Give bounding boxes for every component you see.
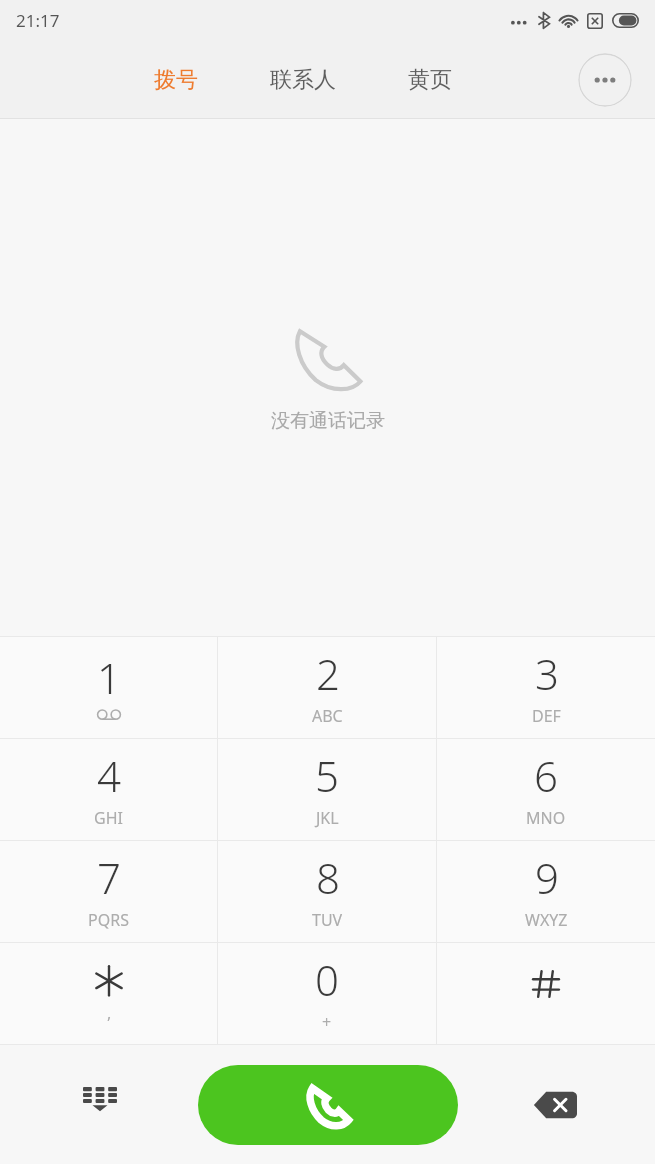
button[interactable]: 5 <box>218 739 436 840</box>
button[interactable]: Delete <box>527 1077 583 1133</box>
button[interactable]: 3 <box>437 637 655 738</box>
button[interactable]: 9 <box>437 841 655 942</box>
staticText: 9 <box>535 849 559 906</box>
button[interactable]: , <box>0 943 217 1044</box>
button[interactable]: 4 <box>0 739 217 840</box>
staticText: DEF <box>532 705 561 727</box>
button[interactable]: 拨号 <box>150 58 202 102</box>
staticText: TUV <box>312 909 343 931</box>
staticText: 3 <box>535 645 559 702</box>
staticText: 拨号 <box>154 66 198 94</box>
staticText: 21:17 <box>16 9 60 32</box>
staticText: PQRS <box>88 909 129 931</box>
staticText: 黄页 <box>408 66 452 94</box>
button[interactable] <box>437 943 655 1044</box>
button[interactable]: More options <box>578 53 632 107</box>
button[interactable]: 1 <box>0 637 217 738</box>
staticText: MNO <box>526 807 566 829</box>
button[interactable]: 6 <box>437 739 655 840</box>
staticText: 5 <box>315 747 339 804</box>
staticText: 7 <box>97 849 121 906</box>
staticText: 2 <box>316 645 340 702</box>
button[interactable]: 0 <box>218 943 436 1044</box>
staticText: GHI <box>94 807 123 829</box>
staticText: ABC <box>312 705 343 727</box>
button[interactable]: 8 <box>218 841 436 942</box>
staticText: WXYZ <box>525 909 568 931</box>
button[interactable]: 2 <box>218 637 436 738</box>
button[interactable]: 黄页 <box>404 58 456 102</box>
staticText: 4 <box>97 747 121 804</box>
button[interactable]: 7 <box>0 841 217 942</box>
staticText: 0 <box>315 951 339 1008</box>
staticText: 联系人 <box>270 66 336 94</box>
staticText: 没有通话记录 <box>271 409 385 433</box>
button[interactable]: Call <box>198 1065 458 1145</box>
staticText: + <box>322 1011 332 1033</box>
staticText: JKL <box>316 807 339 829</box>
staticText: 8 <box>316 849 340 906</box>
staticText: 1 <box>97 649 121 706</box>
button[interactable]: 联系人 <box>266 58 340 102</box>
staticText: , <box>107 1002 112 1024</box>
staticText: 6 <box>534 747 558 804</box>
button[interactable]: Hide dialpad <box>72 1077 128 1133</box>
